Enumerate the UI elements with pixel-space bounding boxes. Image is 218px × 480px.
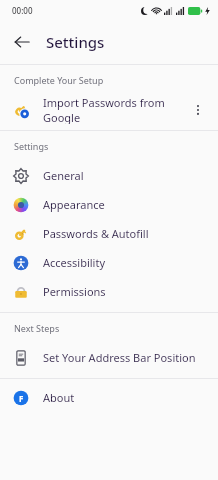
staticText: Settings [46, 32, 105, 52]
staticText: Import Passwords from Google [43, 95, 186, 124]
button[interactable]: Permissions [0, 277, 218, 306]
button[interactable]: Import Passwords from Google [0, 95, 218, 124]
staticText: Settings [14, 140, 49, 152]
button[interactable]: Back [4, 24, 40, 60]
button[interactable]: Appearance [0, 190, 218, 219]
staticText: Permissions [43, 284, 210, 299]
staticText: Set Your Address Bar Position [43, 350, 210, 365]
button[interactable]: Accessibility [0, 248, 218, 277]
button[interactable]: Set Your Address Bar Position [0, 343, 218, 372]
staticText: General [43, 168, 210, 183]
button[interactable]: F [0, 383, 218, 412]
staticText: F [19, 393, 24, 404]
staticText: 00:00 [12, 5, 33, 16]
staticText: About [43, 390, 210, 405]
staticText: Accessibility [43, 255, 210, 270]
staticText: Next Steps [14, 322, 60, 334]
staticText: Complete Your Setup [14, 74, 104, 86]
staticText: Appearance [43, 197, 210, 212]
button[interactable]: More options [186, 98, 210, 122]
staticText: Passwords & Autofill [43, 226, 210, 241]
button[interactable]: General [0, 161, 218, 190]
button[interactable]: Passwords & Autofill [0, 219, 218, 248]
